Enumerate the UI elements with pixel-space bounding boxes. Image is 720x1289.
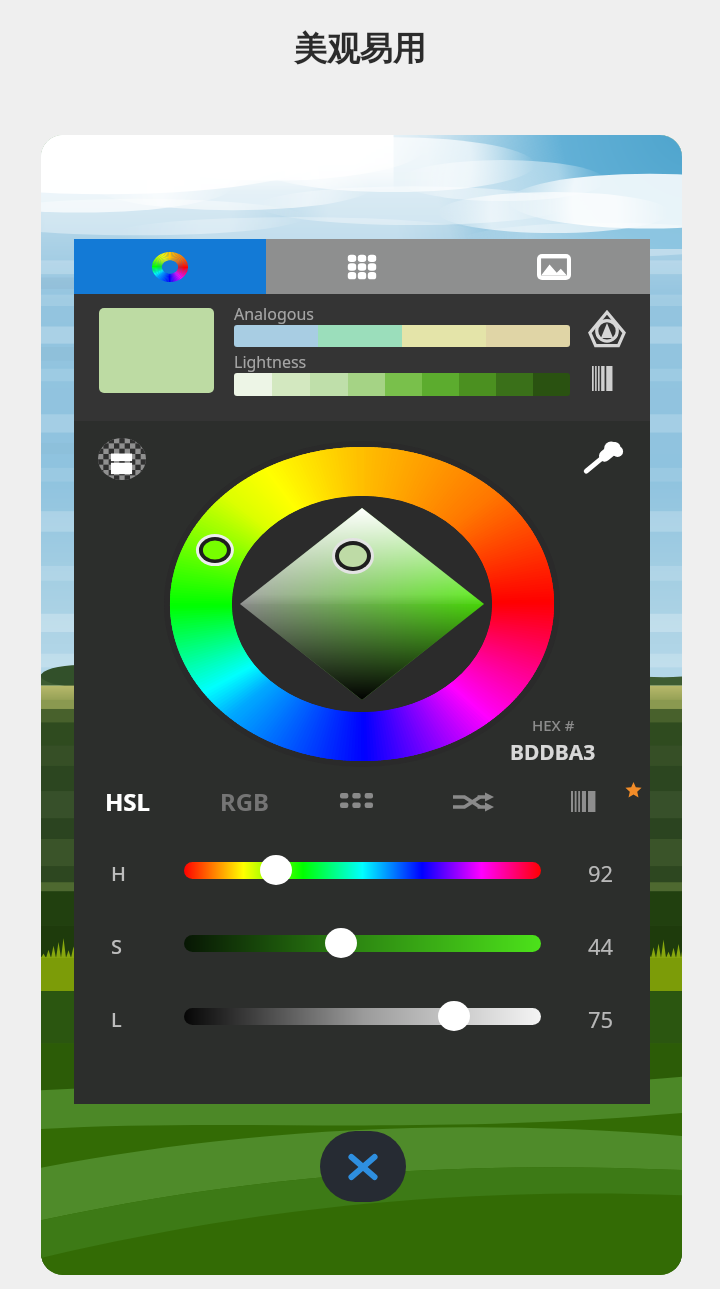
staticText: H bbox=[111, 860, 126, 887]
button[interactable]: Shuffle bbox=[451, 788, 496, 815]
button[interactable]: Close bbox=[320, 1131, 406, 1202]
button[interactable] bbox=[184, 1008, 541, 1025]
button[interactable]: Palettes bbox=[266, 239, 458, 294]
staticText: BDDBA3 bbox=[510, 738, 596, 767]
button[interactable]: Image bbox=[458, 239, 650, 294]
button[interactable]: Barcode bbox=[568, 788, 610, 815]
button[interactable]: Shades bbox=[592, 366, 623, 391]
staticText: 92 bbox=[588, 858, 614, 888]
button[interactable]: Harmony bbox=[588, 310, 626, 348]
button[interactable] bbox=[184, 862, 541, 879]
staticText: 44 bbox=[588, 931, 614, 961]
button[interactable]: RGB bbox=[220, 785, 270, 818]
staticText: S bbox=[111, 933, 122, 960]
staticText: Analogous bbox=[234, 303, 314, 325]
button[interactable]: Alpha bbox=[98, 438, 146, 480]
button[interactable]: Grid bbox=[335, 788, 380, 815]
button[interactable]: Current color bbox=[99, 308, 214, 393]
button[interactable]: HSL bbox=[105, 785, 150, 818]
staticText: HEX # bbox=[532, 715, 575, 735]
button[interactable]: Color wheel bbox=[74, 239, 266, 294]
staticText: Lightness bbox=[234, 351, 307, 373]
staticText: 美观易用 bbox=[294, 28, 426, 70]
button[interactable] bbox=[184, 935, 541, 952]
staticText: L bbox=[111, 1006, 122, 1033]
staticText: 75 bbox=[588, 1004, 614, 1034]
button[interactable]: Eyedropper bbox=[578, 440, 624, 478]
